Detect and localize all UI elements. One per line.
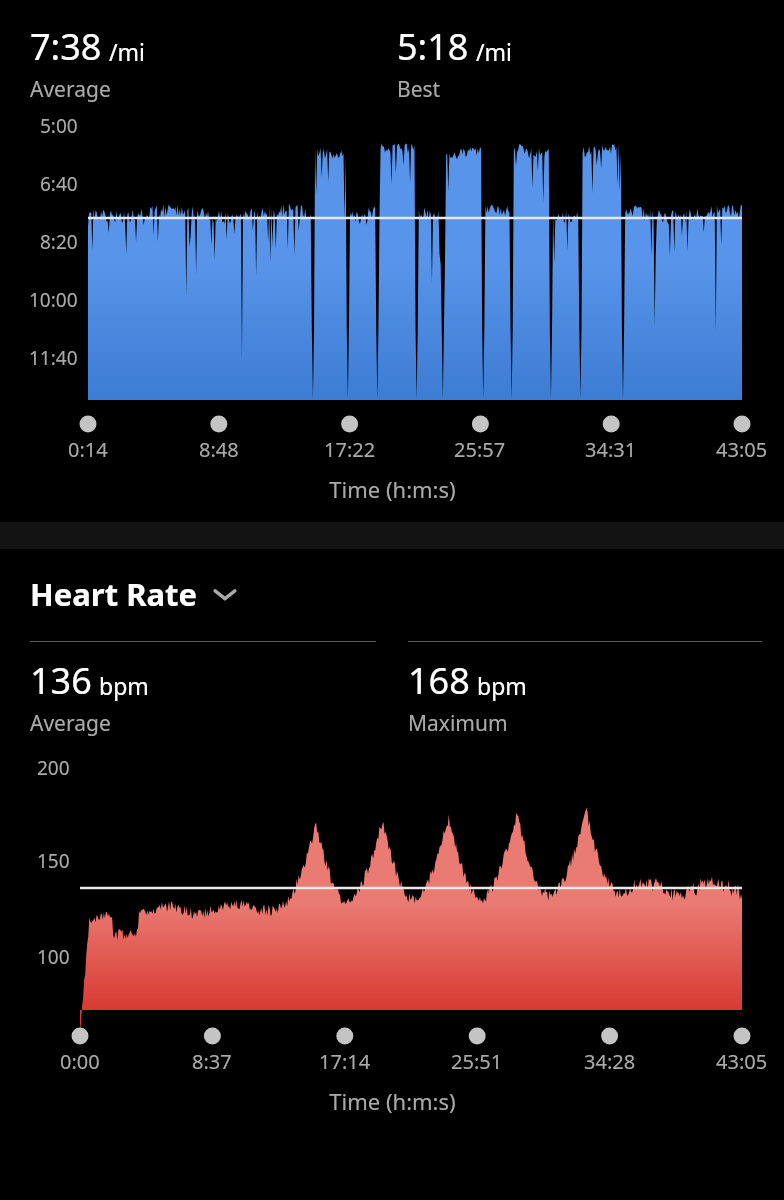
- staticText: 17:14: [319, 1048, 371, 1075]
- staticText: 200: [37, 755, 70, 781]
- staticText: 100: [37, 944, 70, 970]
- staticText: 5:00: [40, 113, 78, 139]
- staticText: 10:00: [29, 287, 78, 313]
- staticText: Best: [397, 75, 441, 104]
- staticText: 8:20: [40, 229, 78, 255]
- staticText: /mi: [476, 36, 512, 67]
- staticText: Maximum: [408, 709, 508, 738]
- staticText: 5:18: [397, 22, 469, 71]
- staticText: 43:05: [716, 1048, 768, 1075]
- staticText: Average: [30, 75, 111, 104]
- staticText: bpm: [99, 670, 149, 701]
- staticText: 136: [30, 656, 92, 705]
- staticText: 34:28: [584, 1048, 636, 1075]
- staticText: bpm: [477, 670, 527, 701]
- staticText: 25:57: [454, 436, 506, 463]
- staticText: 25:51: [451, 1048, 503, 1075]
- staticText: 43:05: [716, 436, 768, 463]
- staticText: 34:31: [585, 436, 637, 463]
- staticText: Time (h:m:s): [329, 1086, 456, 1116]
- staticText: 168: [408, 656, 470, 705]
- button[interactable]: Heart Rate, change metric: [30, 573, 238, 615]
- staticText: Average: [30, 709, 111, 738]
- staticText: Heart Rate: [30, 573, 198, 615]
- staticText: 8:48: [199, 436, 239, 463]
- staticText: 8:37: [192, 1048, 232, 1075]
- staticText: 0:14: [68, 436, 108, 463]
- staticText: 6:40: [40, 171, 78, 197]
- staticText: /mi: [109, 36, 145, 67]
- staticText: 150: [37, 848, 70, 874]
- staticText: Time (h:m:s): [329, 474, 456, 504]
- staticText: 7:38: [30, 22, 102, 71]
- staticText: 0:00: [60, 1048, 100, 1075]
- staticText: 17:22: [324, 436, 376, 463]
- staticText: 11:40: [29, 345, 78, 371]
